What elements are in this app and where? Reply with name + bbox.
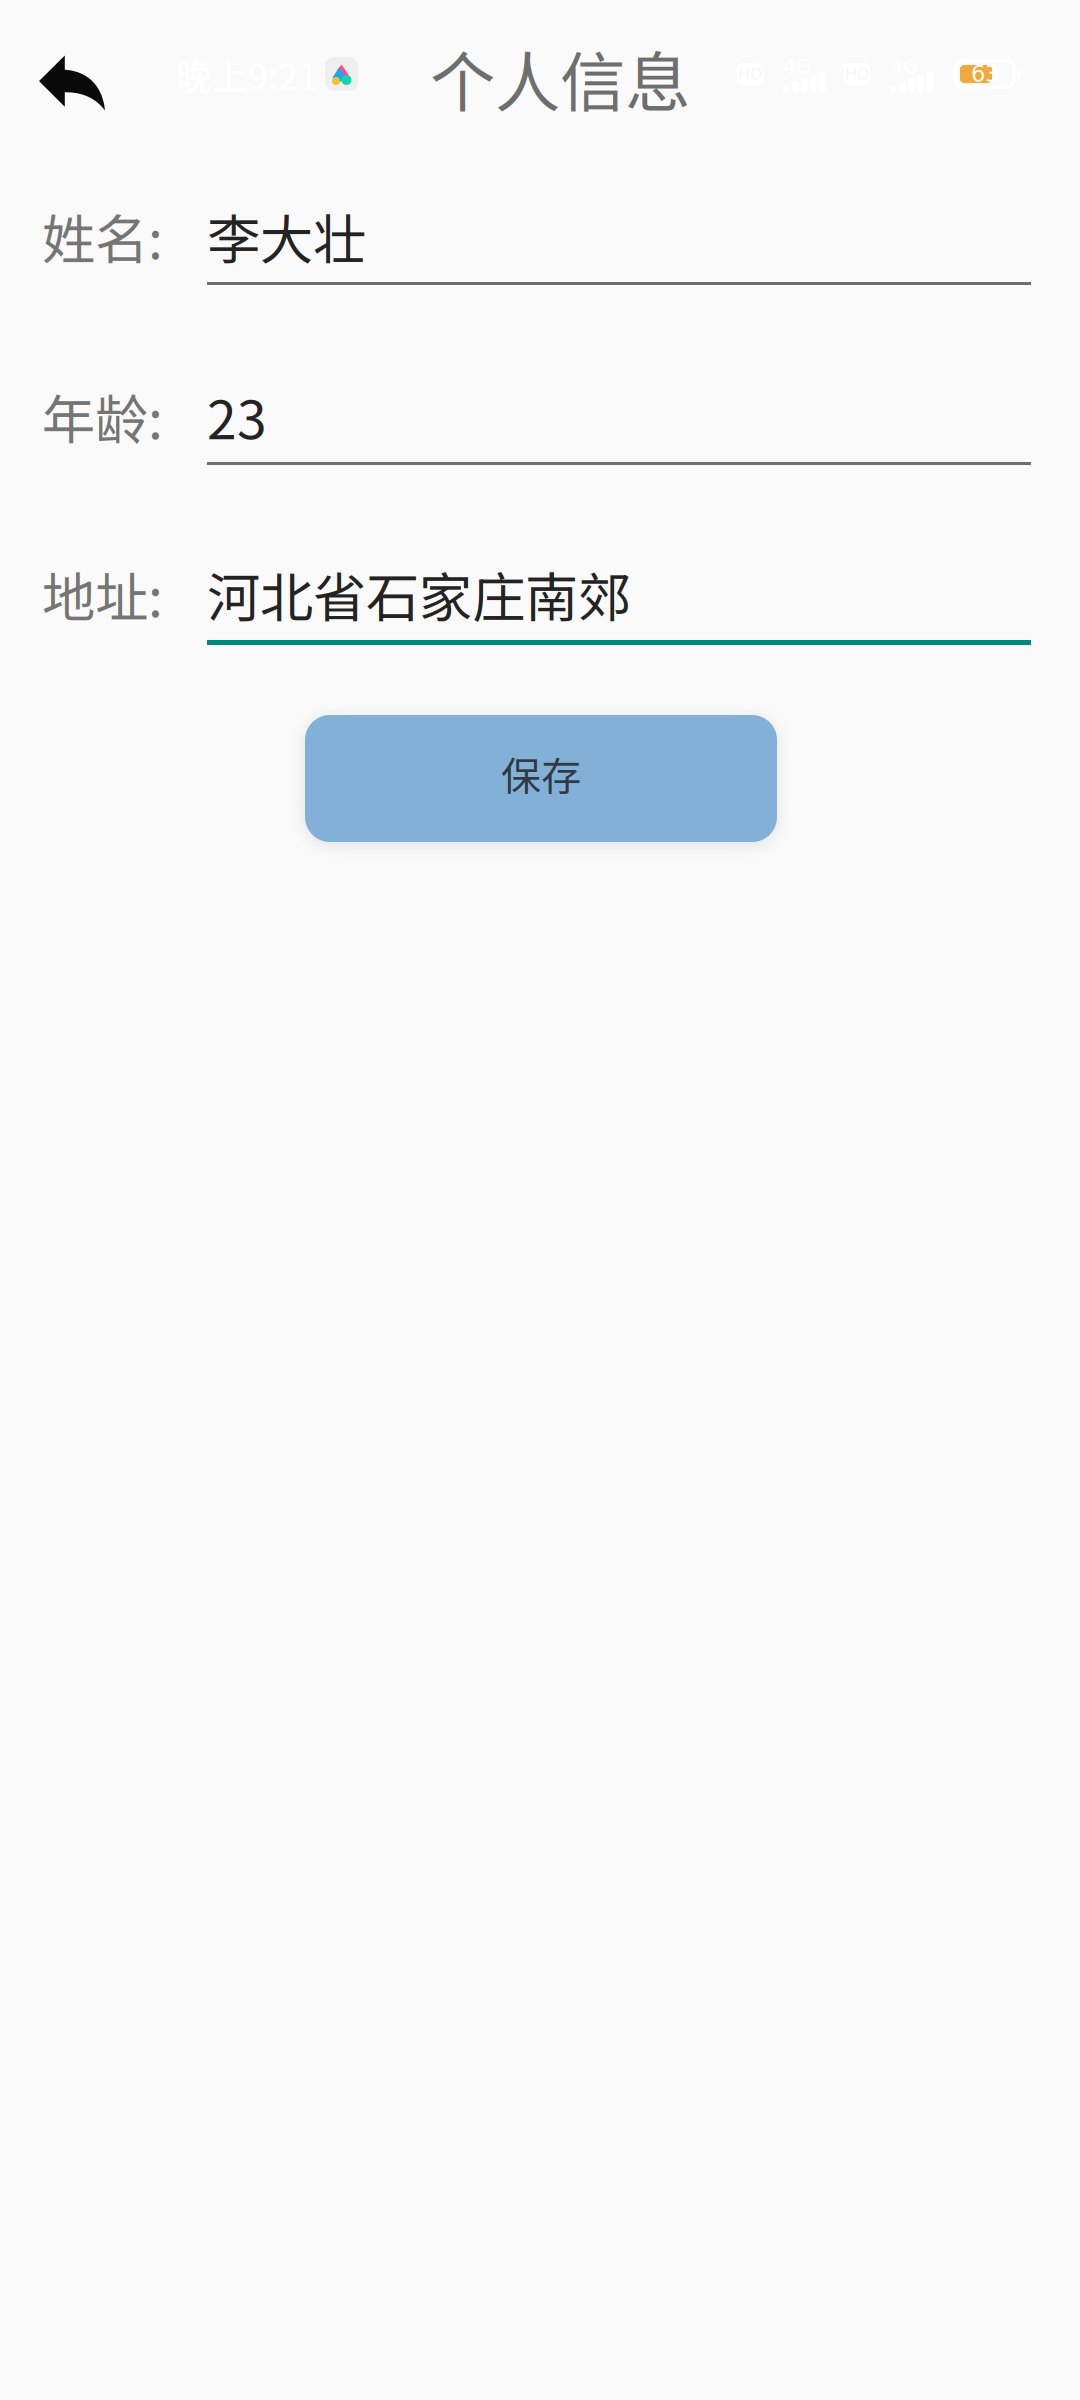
staticText: 年龄: [42,377,163,455]
staticText: 63 [971,61,999,87]
staticText: 李大壮 [207,197,366,275]
staticText: 河北省石家庄南郊 [207,555,631,633]
button[interactable]: 保存 [305,715,777,842]
button[interactable]: 23 [207,388,1031,465]
staticText: 保存 [501,744,581,802]
button[interactable]: 李大壮 [207,208,1031,285]
staticText: 姓名: [42,197,163,275]
button[interactable]: 河北省石家庄南郊 [207,566,1031,645]
staticText: 个人信息 [430,31,690,125]
staticText: HD [845,65,869,83]
button[interactable]: Back [0,18,129,138]
staticText: 23 [207,377,267,455]
staticText: 地址: [42,555,163,633]
staticText: HD [738,65,762,83]
